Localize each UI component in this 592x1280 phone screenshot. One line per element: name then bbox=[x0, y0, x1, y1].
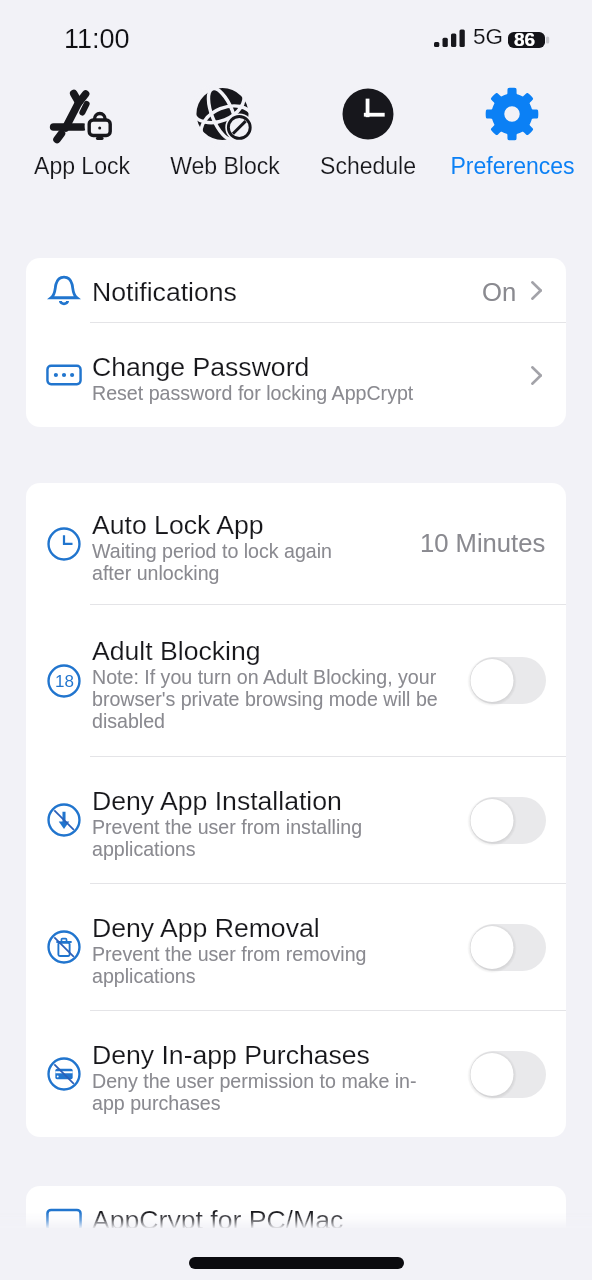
staticText: Reset password for locking AppCrypt bbox=[92, 382, 414, 404]
button[interactable]: Toggle switch bbox=[470, 797, 546, 844]
staticText: 5G bbox=[473, 24, 504, 49]
staticText: Adult Blocking bbox=[92, 636, 261, 666]
staticText: Preferences bbox=[450, 153, 575, 179]
staticText: Prevent the user from removing applicati… bbox=[92, 943, 444, 987]
staticText: 10 Minutes bbox=[420, 529, 546, 558]
staticText: Change Password bbox=[92, 352, 310, 382]
button[interactable]: Deny In-app Purchases bbox=[26, 1011, 566, 1137]
button[interactable]: AppCrypt for PC/Mac bbox=[26, 1186, 566, 1228]
button[interactable]: Toggle switch bbox=[470, 1051, 546, 1098]
staticText: Waiting period to lock again after unloc… bbox=[92, 540, 354, 584]
staticText: Deny In-app Purchases bbox=[92, 1040, 370, 1070]
button[interactable]: Deny App Installation bbox=[26, 757, 566, 883]
staticText: Deny App Installation bbox=[92, 786, 342, 816]
staticText: 86 bbox=[514, 29, 536, 50]
staticText: AppCrypt for PC/Mac bbox=[92, 1205, 344, 1228]
button[interactable]: 18 bbox=[26, 605, 566, 756]
staticText: Deny the user permission to make in-app … bbox=[92, 1070, 444, 1114]
staticText: Web Block bbox=[170, 153, 280, 179]
staticText: Prevent the user from installing applica… bbox=[92, 816, 444, 860]
staticText: On bbox=[482, 278, 517, 307]
button[interactable]: Web Block bbox=[153, 88, 296, 179]
staticText: Note: If you turn on Adult Blocking, you… bbox=[92, 666, 444, 732]
button[interactable]: Schedule bbox=[296, 88, 440, 179]
button[interactable]: Change Password bbox=[26, 323, 566, 427]
staticText: App Lock bbox=[34, 153, 130, 179]
button[interactable]: Auto Lock App bbox=[26, 483, 566, 604]
button[interactable]: Toggle switch bbox=[470, 924, 546, 971]
button[interactable]: Preferences bbox=[440, 88, 584, 179]
staticText: 18 bbox=[55, 672, 74, 691]
staticText: Deny App Removal bbox=[92, 913, 320, 943]
button[interactable]: Toggle switch bbox=[470, 657, 546, 704]
button[interactable]: Deny App Removal bbox=[26, 884, 566, 1010]
staticText: Auto Lock App bbox=[92, 510, 264, 540]
staticText: Notifications bbox=[92, 277, 237, 307]
button[interactable]: Notifications bbox=[26, 258, 566, 322]
button[interactable]: App Lock bbox=[10, 88, 153, 179]
staticText: 11:00 bbox=[64, 24, 130, 54]
staticText: Schedule bbox=[320, 153, 416, 179]
